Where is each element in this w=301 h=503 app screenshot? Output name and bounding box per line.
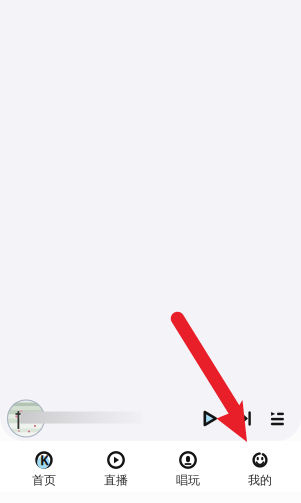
staticText: 唱玩 — [176, 473, 200, 488]
button[interactable]: 直播 — [80, 441, 152, 492]
staticText: 直播 — [104, 473, 128, 488]
button[interactable]: K — [8, 441, 80, 492]
staticText: 首页 — [32, 473, 56, 488]
staticText: K — [40, 451, 49, 469]
button[interactable]: Play — [197, 401, 223, 436]
button[interactable]: 我的 — [224, 441, 296, 492]
button[interactable]: Next track — [223, 403, 257, 434]
button[interactable]: Playlist — [257, 403, 293, 434]
button[interactable]: 唱玩 — [152, 441, 224, 492]
staticText: 我的 — [248, 473, 272, 488]
